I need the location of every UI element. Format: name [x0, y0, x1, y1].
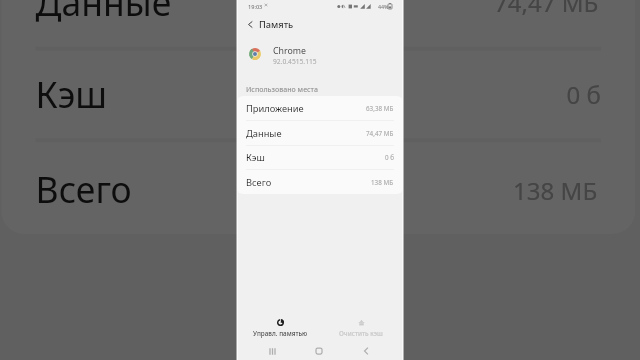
button[interactable]: Back	[240, 14, 260, 34]
staticText: Использовано места	[246, 85, 318, 95]
staticText: 74,47 МБ	[494, 0, 601, 20]
staticText: Приложение	[246, 102, 304, 115]
button[interactable]: Данные	[237, 121, 403, 146]
button[interactable]: Очистить кэш	[326, 312, 396, 340]
button[interactable]: Данные	[1, 0, 635, 51]
staticText: Управл. памятью	[253, 329, 308, 338]
staticText: 92.0.4515.115	[273, 57, 317, 66]
staticText: Данные	[36, 0, 173, 28]
staticText: Всего	[246, 176, 272, 189]
staticText: Память	[259, 18, 294, 31]
staticText: Всего	[36, 165, 135, 215]
button[interactable]: Back	[357, 342, 375, 360]
staticText: 19:03	[248, 3, 263, 11]
staticText: 0 б	[567, 77, 601, 112]
staticText: 63,38 МБ	[366, 104, 394, 113]
button[interactable]: Управл. памятью	[245, 312, 315, 340]
staticText: Chrome	[273, 45, 306, 57]
button[interactable]: Приложение	[237, 96, 403, 121]
button[interactable]: Всего	[1, 142, 635, 234]
button[interactable]: Кэш	[237, 145, 403, 170]
staticText: Данные	[246, 127, 282, 140]
button[interactable]: Chrome	[237, 38, 403, 70]
staticText: Кэш	[246, 151, 265, 164]
staticText: Очистить кэш	[339, 329, 383, 338]
staticText: 138 МБ	[371, 178, 394, 187]
button[interactable]: Всего	[237, 170, 403, 194]
staticText: 44%	[378, 3, 389, 10]
button[interactable]: Recents	[263, 342, 281, 360]
staticText: 138 МБ	[513, 173, 601, 207]
staticText: 74,47 МБ	[366, 129, 394, 138]
staticText: Кэш	[36, 70, 108, 119]
button[interactable]: Home	[310, 342, 328, 360]
button[interactable]: Кэш	[1, 47, 635, 142]
staticText: 0 б	[385, 153, 394, 162]
